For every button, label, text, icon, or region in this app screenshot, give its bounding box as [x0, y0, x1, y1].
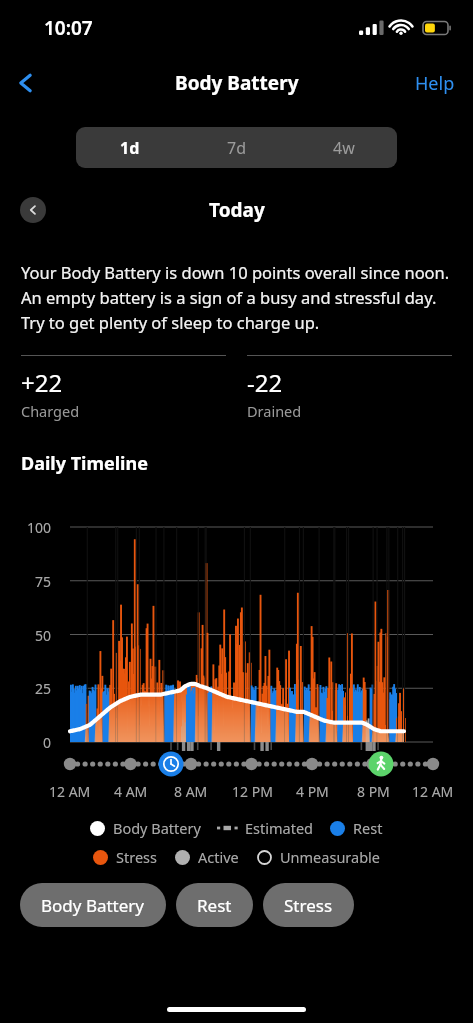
staticText: 4 PM — [296, 782, 329, 801]
staticText: Help — [415, 71, 455, 96]
staticText: 8 AM — [174, 782, 208, 801]
staticText: Rest — [197, 894, 232, 917]
staticText: 100 — [27, 518, 52, 537]
staticText: Stress — [116, 847, 157, 867]
staticText: 8 PM — [357, 782, 390, 801]
staticText: +22 — [21, 366, 63, 399]
staticText: 4 AM — [114, 782, 148, 801]
staticText: Estimated — [245, 818, 314, 838]
staticText: 75 — [35, 572, 52, 591]
staticText: Body Battery — [41, 894, 145, 917]
staticText: Charged — [21, 401, 80, 421]
staticText: Body Battery — [113, 818, 201, 838]
button[interactable]: Rest — [176, 883, 253, 927]
staticText: Body Battery — [175, 70, 299, 96]
staticText: 7d — [227, 137, 246, 159]
staticText: 0 — [43, 733, 52, 752]
button[interactable]: Back — [0, 57, 52, 109]
staticText: 1d — [120, 137, 140, 159]
staticText: Stress — [284, 894, 333, 917]
staticText: 12 AM — [412, 782, 454, 801]
staticText: 50 — [35, 626, 52, 645]
staticText: 12 AM — [49, 782, 91, 801]
staticText: Unmeasurable — [280, 847, 381, 867]
staticText: -22 — [247, 366, 283, 399]
staticText: 10:07 — [44, 15, 93, 41]
staticText: 4w — [333, 137, 355, 159]
staticText: Daily Timeline — [21, 451, 148, 476]
staticText: Active — [198, 847, 239, 867]
button[interactable]: 7d — [183, 127, 290, 168]
staticText: Rest — [353, 818, 383, 838]
button[interactable]: Stress — [263, 883, 354, 927]
staticText: Your Body Battery is down 10 points over… — [21, 261, 455, 333]
staticText: 25 — [35, 679, 52, 698]
staticText: Drained — [247, 401, 302, 421]
button[interactable]: Body Battery — [20, 883, 166, 927]
button[interactable]: Previous day — [20, 197, 46, 223]
button[interactable]: 1d — [76, 127, 183, 168]
staticText: 12 PM — [232, 782, 273, 801]
button[interactable]: Help — [397, 63, 473, 104]
staticText: Today — [209, 197, 265, 223]
button[interactable]: 4w — [290, 127, 397, 168]
